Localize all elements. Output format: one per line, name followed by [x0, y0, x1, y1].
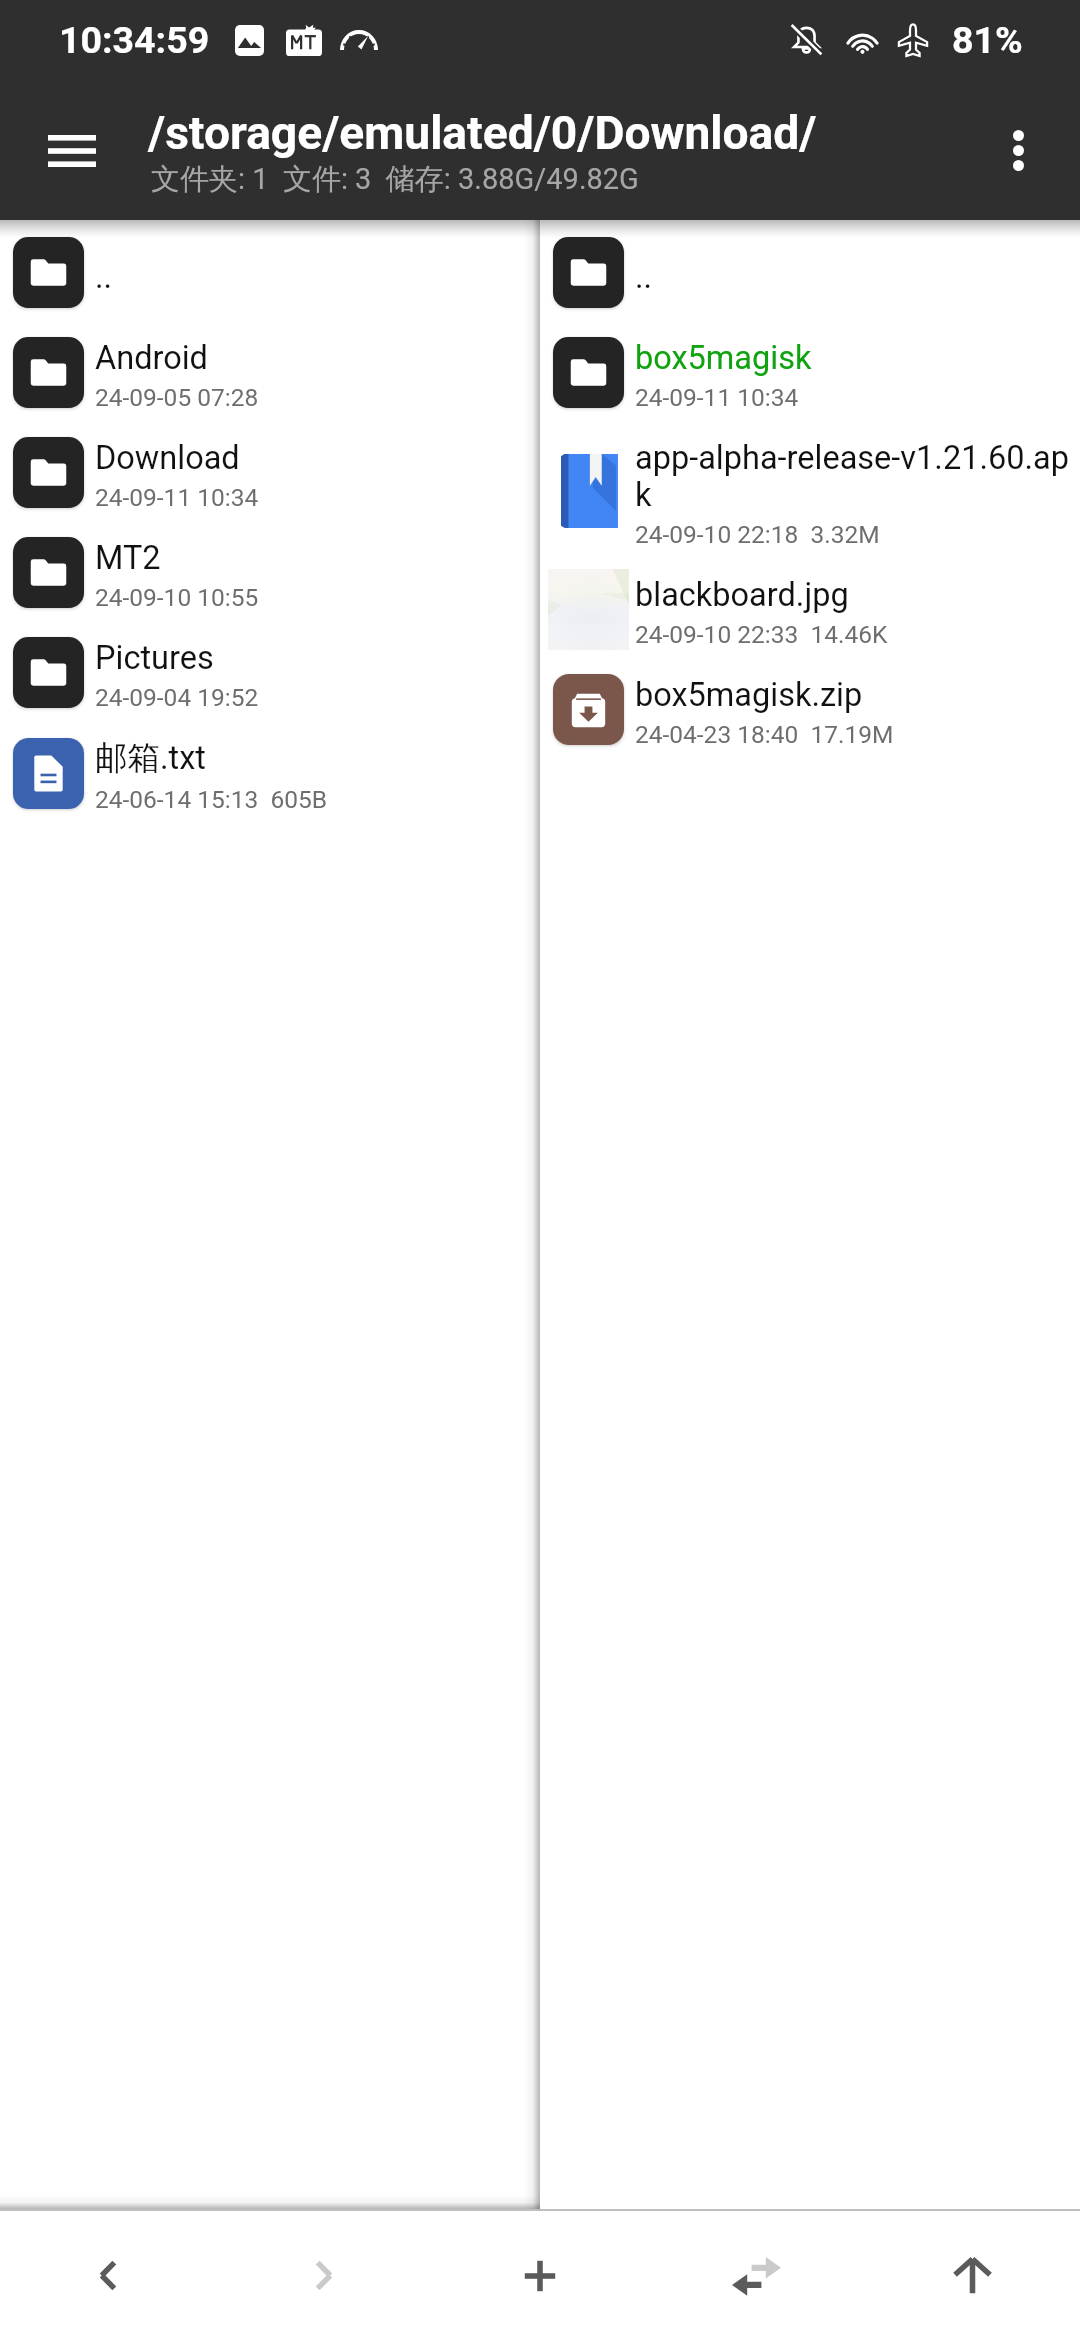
staticText: 10:34:59	[59, 18, 210, 62]
staticText: 24-09-11 10:34	[635, 377, 799, 414]
button[interactable]: Up	[864, 2211, 1080, 2340]
staticText: 24-09-11 10:34	[95, 477, 259, 514]
staticText: 24-09-05 07:28	[95, 377, 259, 414]
staticText: 文件夹: 1 文件: 3 储存: 3.88G/49.82G	[151, 160, 639, 198]
staticText: MT2	[95, 540, 161, 577]
button[interactable]: MT2	[0, 522, 540, 622]
staticText: 24-06-14 15:13 605B	[95, 779, 327, 816]
staticText: Android	[95, 340, 208, 377]
staticText: ..	[95, 259, 113, 296]
button[interactable]: Back	[0, 2211, 216, 2340]
button[interactable]: box5magisk	[540, 322, 1080, 422]
staticText: 24-09-10 22:33 14.46K	[635, 614, 888, 651]
staticText: blackboard.jpg	[635, 577, 849, 614]
button[interactable]: ..	[0, 222, 540, 322]
button[interactable]: New	[432, 2211, 648, 2340]
staticText: 邮箱.txt	[95, 740, 206, 779]
button[interactable]: 邮箱.txt	[0, 722, 540, 824]
button[interactable]: app-alpha-release-v1.21.60.ap	[540, 422, 1080, 559]
staticText: box5magisk	[635, 340, 812, 377]
staticText: box5magisk.zip	[635, 677, 863, 714]
button[interactable]: blackboard.jpg	[540, 559, 1080, 659]
button[interactable]: Pictures	[0, 622, 540, 722]
button[interactable]: Menu	[22, 101, 122, 201]
staticText: app-alpha-release-v1.21.60.ap	[635, 440, 1070, 477]
staticText: 24-04-23 18:40 17.19M	[635, 714, 894, 751]
staticText: 24-09-04 19:52	[95, 677, 259, 714]
staticText: /storage/emulated/0/Download/	[148, 108, 817, 160]
button[interactable]: box5magisk.zip	[540, 659, 1080, 759]
button[interactable]: Forward	[216, 2211, 432, 2340]
staticText: 24-09-10 10:55	[95, 577, 259, 614]
button[interactable]: ..	[540, 222, 1080, 322]
staticText: Pictures	[95, 640, 214, 677]
staticText: ..	[635, 259, 653, 296]
staticText: 24-09-10 22:18 3.32M	[635, 514, 880, 551]
button[interactable]: More options	[970, 102, 1066, 198]
button[interactable]: Switch panes	[648, 2211, 864, 2340]
staticText: Download	[95, 440, 240, 477]
staticText: 81%	[952, 18, 1023, 62]
button[interactable]: Download	[0, 422, 540, 522]
staticText: k	[635, 477, 652, 514]
button[interactable]: Android	[0, 322, 540, 422]
